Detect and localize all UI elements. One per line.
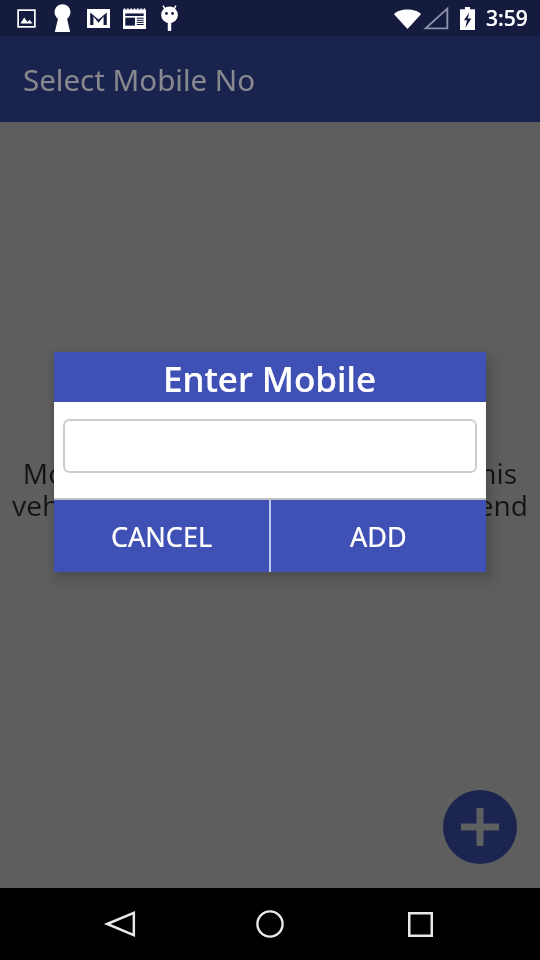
button[interactable]: Home	[240, 894, 300, 954]
staticText: 3:59	[486, 4, 528, 33]
button[interactable]: CANCEL	[54, 500, 269, 572]
staticText: CANCEL	[111, 518, 213, 555]
button[interactable]: Back	[90, 894, 150, 954]
staticText: Enter Mobile	[163, 355, 377, 403]
staticText: Mobile no is not registered under this v…	[4, 454, 536, 524]
staticText: Select Mobile No	[23, 59, 256, 99]
button[interactable]	[63, 419, 477, 473]
button[interactable]: ADD	[271, 500, 486, 572]
button[interactable]: Recents	[390, 894, 450, 954]
staticText: ADD	[350, 518, 407, 555]
button[interactable]: Add	[443, 790, 517, 864]
